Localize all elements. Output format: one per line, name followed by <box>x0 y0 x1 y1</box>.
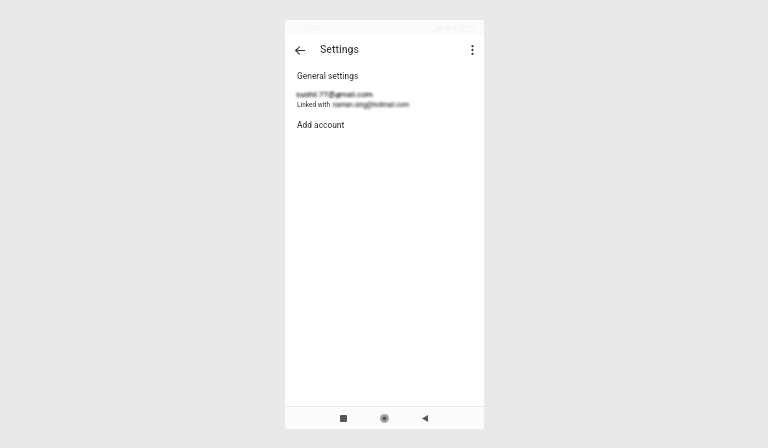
button[interactable]: General settings <box>285 66 484 85</box>
button[interactable]: sushil.77@gmail.com <box>285 87 484 113</box>
button[interactable]: Navigate up <box>290 41 309 60</box>
button[interactable]: More options <box>463 41 481 59</box>
staticText: naman.sing@hotmail.com <box>333 101 410 109</box>
button[interactable]: Home <box>364 406 404 429</box>
staticText: Linked with <box>297 101 331 109</box>
button[interactable]: Recent apps <box>323 406 363 429</box>
staticText: sushil.77@gmail.com <box>296 90 373 99</box>
staticText: Settings <box>320 43 359 55</box>
staticText: Add account <box>297 120 345 130</box>
staticText: General settings <box>297 71 359 81</box>
staticText: naman.sing@hotmail.com <box>333 101 410 109</box>
button[interactable]: Back <box>405 406 445 429</box>
button[interactable]: Add account <box>285 115 484 135</box>
staticText: sushil.77@gmail.com <box>296 90 373 99</box>
